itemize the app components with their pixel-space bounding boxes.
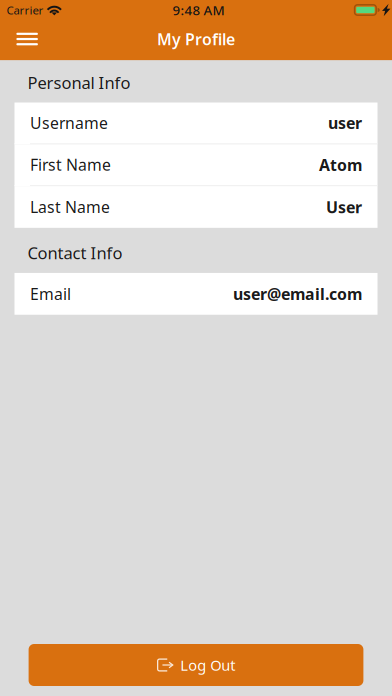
staticText: First Name <box>30 154 111 175</box>
button[interactable]: Email <box>14 273 377 315</box>
staticText: 9:48 AM <box>172 1 224 19</box>
button[interactable]: Open menu <box>0 20 54 60</box>
staticText: Last Name <box>30 196 110 218</box>
button[interactable]: Last Name <box>14 186 377 228</box>
staticText: Atom <box>319 154 362 175</box>
staticText: Personal Info <box>27 71 130 94</box>
button[interactable]: Username <box>14 102 377 144</box>
staticText: Username <box>30 112 108 134</box>
staticText: user@email.com <box>233 283 362 305</box>
button[interactable]: Log Out <box>29 644 363 686</box>
staticText: User <box>326 196 362 218</box>
button[interactable]: First Name <box>14 144 377 186</box>
staticText: Email <box>30 283 71 304</box>
staticText: user <box>328 112 362 134</box>
staticText: Carrier <box>6 2 43 18</box>
staticText: Log Out <box>180 655 235 675</box>
staticText: My Profile <box>157 28 235 50</box>
staticText: Contact Info <box>27 242 122 264</box>
